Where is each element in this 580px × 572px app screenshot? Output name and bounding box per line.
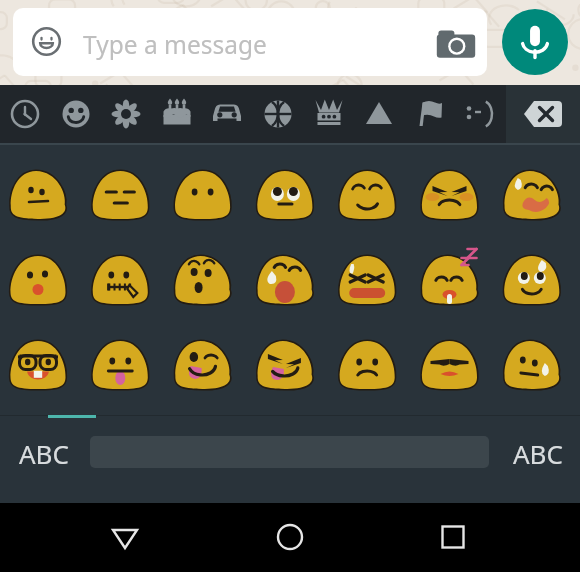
button[interactable]: Food (154, 91, 200, 137)
button[interactable]: Emoji 16 (84, 329, 156, 401)
button[interactable]: Emoji 14 (496, 244, 568, 316)
button[interactable]: Home (268, 515, 312, 559)
button[interactable]: Emoji (13, 8, 487, 76)
button[interactable]: Emoji 10 (167, 244, 239, 316)
button[interactable]: Emoji 17 (167, 329, 239, 401)
button[interactable]: Emoji 20 (414, 329, 486, 401)
button[interactable]: Recents (431, 515, 475, 559)
button[interactable]: ABC (504, 432, 571, 474)
button[interactable]: Delete (506, 85, 580, 143)
button[interactable]: Recent (2, 91, 48, 137)
button[interactable]: Emoji 3 (167, 159, 239, 231)
button[interactable]: Emoji (31, 26, 62, 57)
button[interactable]: Emoji 5 (331, 159, 403, 231)
button[interactable]: Emoji 15 (2, 329, 74, 401)
button[interactable]: Symbols (356, 91, 402, 137)
button[interactable]: Emoji 11 (249, 244, 321, 316)
staticText: Type a message (83, 28, 267, 61)
button[interactable]: Emoji 19 (331, 329, 403, 401)
button[interactable]: Smileys (53, 91, 99, 137)
button[interactable]: Voice message (502, 9, 568, 75)
button[interactable]: Emoji 4 (249, 159, 321, 231)
button[interactable]: Emoji 13 (414, 244, 486, 316)
button[interactable]: Emoji 2 (84, 159, 156, 231)
staticText: ABC (513, 436, 563, 471)
button[interactable]: Emoji 9 (84, 244, 156, 316)
button[interactable]: Emoji 7 (496, 159, 568, 231)
button[interactable]: Emoji 6 (414, 159, 486, 231)
button[interactable]: Emoji 18 (249, 329, 321, 401)
button[interactable]: ABC (10, 432, 77, 474)
button[interactable]: Flags (407, 91, 453, 137)
button[interactable]: Back (103, 515, 147, 559)
button[interactable]: Emoji 1 (2, 159, 74, 231)
button[interactable]: Activity (255, 91, 301, 137)
button[interactable]: Emoji 12 (331, 244, 403, 316)
button[interactable]: Travel (204, 91, 250, 137)
staticText: ABC (19, 436, 69, 471)
button[interactable]: Camera (436, 25, 476, 65)
button[interactable]: Emoji 8 (2, 244, 74, 316)
button[interactable]: Objects (306, 91, 352, 137)
button[interactable]: Emoticons (457, 91, 503, 137)
button[interactable]: Nature (103, 91, 149, 137)
button[interactable]: Emoji 21 (496, 329, 568, 401)
